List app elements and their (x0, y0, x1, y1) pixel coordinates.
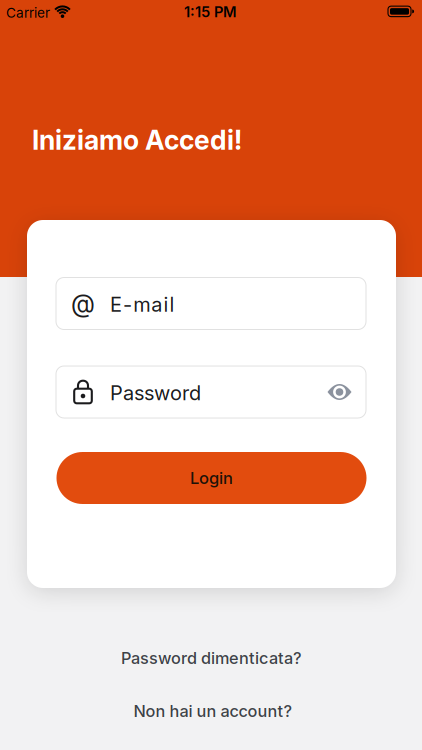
button[interactable]: Non hai un account? (133, 701, 292, 721)
staticText: Password dimenticata? (121, 648, 302, 668)
staticText: Login (190, 468, 233, 488)
staticText: Password (110, 381, 201, 405)
staticText: Iniziamo Accedi! (32, 124, 242, 156)
staticText: 1:15 PM (184, 3, 237, 21)
staticText: Carrier (6, 4, 50, 21)
staticText: E-mail (110, 292, 174, 317)
button[interactable]: Password (56, 366, 366, 418)
button[interactable]: Login (56, 452, 366, 504)
button[interactable]: Password dimenticata? (121, 648, 302, 668)
button[interactable]: @ (56, 277, 366, 329)
staticText: Non hai un account? (133, 701, 292, 721)
staticText: @ (71, 289, 95, 318)
button[interactable]: Show password (319, 372, 359, 412)
